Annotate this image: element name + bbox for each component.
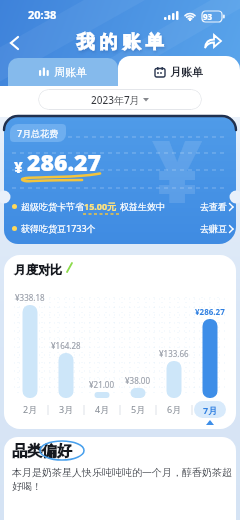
- staticText: ¥: [152, 117, 203, 228]
- staticText: ¥286.27: [195, 306, 225, 317]
- staticText: 权益生效中: [120, 201, 165, 212]
- button[interactable]: 去查看: [200, 201, 234, 212]
- staticText: 2023年7月: [91, 93, 140, 107]
- staticText: 我的账单: [74, 31, 166, 54]
- staticText: 20:38: [28, 7, 57, 22]
- staticText: ¥38.00: [125, 375, 151, 386]
- staticText: 月账单: [170, 65, 203, 79]
- staticText: 本月是奶茶星人快乐吨吨吨的一个月，醇香奶茶超好喝！: [12, 466, 236, 493]
- button[interactable]: [2, 30, 28, 56]
- staticText: 15.00元: [84, 200, 117, 212]
- staticText: 6月: [167, 403, 182, 415]
- staticText: 2月: [23, 403, 38, 415]
- staticText: ¥133.66: [159, 348, 189, 359]
- staticText: 品类偏好: [12, 442, 72, 461]
- button[interactable]: 周账单: [8, 58, 118, 86]
- staticText: 7月: [203, 404, 218, 416]
- button[interactable]: 月账单: [118, 56, 240, 88]
- staticText: ¥164.28: [51, 340, 81, 351]
- staticText: 286.27: [27, 146, 102, 177]
- staticText: 去查看: [200, 201, 227, 212]
- staticText: 去赚豆: [200, 223, 227, 234]
- staticText: 7月总花费: [17, 127, 59, 139]
- staticText: 93: [203, 11, 213, 22]
- staticText: ¥21.00: [89, 379, 115, 390]
- staticText: 4月: [95, 403, 110, 415]
- staticText: ¥338.18: [15, 292, 45, 303]
- staticText: 月度对比: [14, 262, 62, 277]
- staticText: 获得吃货豆1733个: [21, 222, 96, 234]
- button[interactable]: 2023年7月: [38, 89, 202, 110]
- button[interactable]: 7月: [194, 401, 226, 418]
- staticText: 5月: [131, 403, 146, 415]
- staticText: 3月: [59, 403, 74, 415]
- staticText: ¥: [14, 157, 23, 177]
- button[interactable]: 去赚豆: [200, 223, 234, 234]
- button[interactable]: [200, 30, 226, 54]
- staticText: 周账单: [54, 65, 87, 79]
- staticText: 超级吃货卡节省: [21, 201, 84, 212]
